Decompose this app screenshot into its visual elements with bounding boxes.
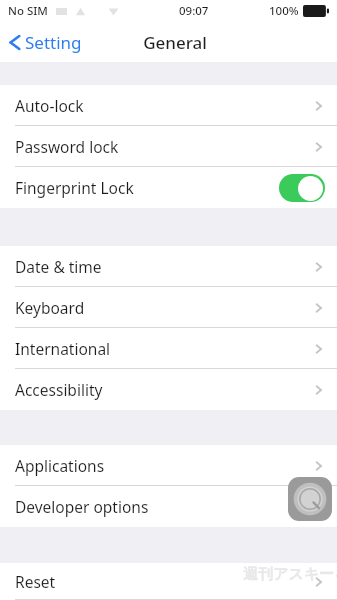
button[interactable]: International: [0, 328, 337, 369]
staticText: 09:07: [179, 3, 209, 19]
button[interactable]: Keyboard: [0, 287, 337, 328]
staticText: International: [15, 338, 111, 359]
staticText: Accessibility: [15, 379, 103, 400]
staticText: Date & time: [15, 256, 102, 277]
staticText: Developer options: [15, 496, 149, 517]
button[interactable]: Accessibility: [0, 369, 337, 410]
button[interactable]: AssistiveTouch: [288, 477, 332, 521]
button[interactable]: Applications: [0, 445, 337, 486]
button[interactable]: Password lock: [0, 126, 337, 167]
button[interactable]: Auto-lock: [0, 85, 337, 126]
button[interactable]: Date & time: [0, 246, 337, 287]
staticText: General: [143, 31, 207, 54]
staticText: Password lock: [15, 136, 119, 157]
staticText: Keyboard: [15, 297, 85, 318]
button[interactable]: Fingerprint Lock: [0, 167, 337, 208]
staticText: 100%: [269, 3, 299, 19]
staticText: Applications: [15, 455, 105, 476]
button[interactable]: Reset: [0, 563, 337, 600]
staticText: 週刊アスキー: [243, 565, 335, 584]
button[interactable]: Fingerprint Lock toggle: [279, 174, 325, 202]
staticText: Auto-lock: [15, 95, 84, 116]
staticText: Reset: [15, 571, 56, 592]
staticText: Fingerprint Lock: [15, 177, 134, 198]
button[interactable]: Developer options: [0, 486, 337, 527]
staticText: Setting: [25, 31, 82, 54]
button[interactable]: Setting: [6, 31, 82, 54]
staticText: No SIM: [8, 3, 48, 19]
